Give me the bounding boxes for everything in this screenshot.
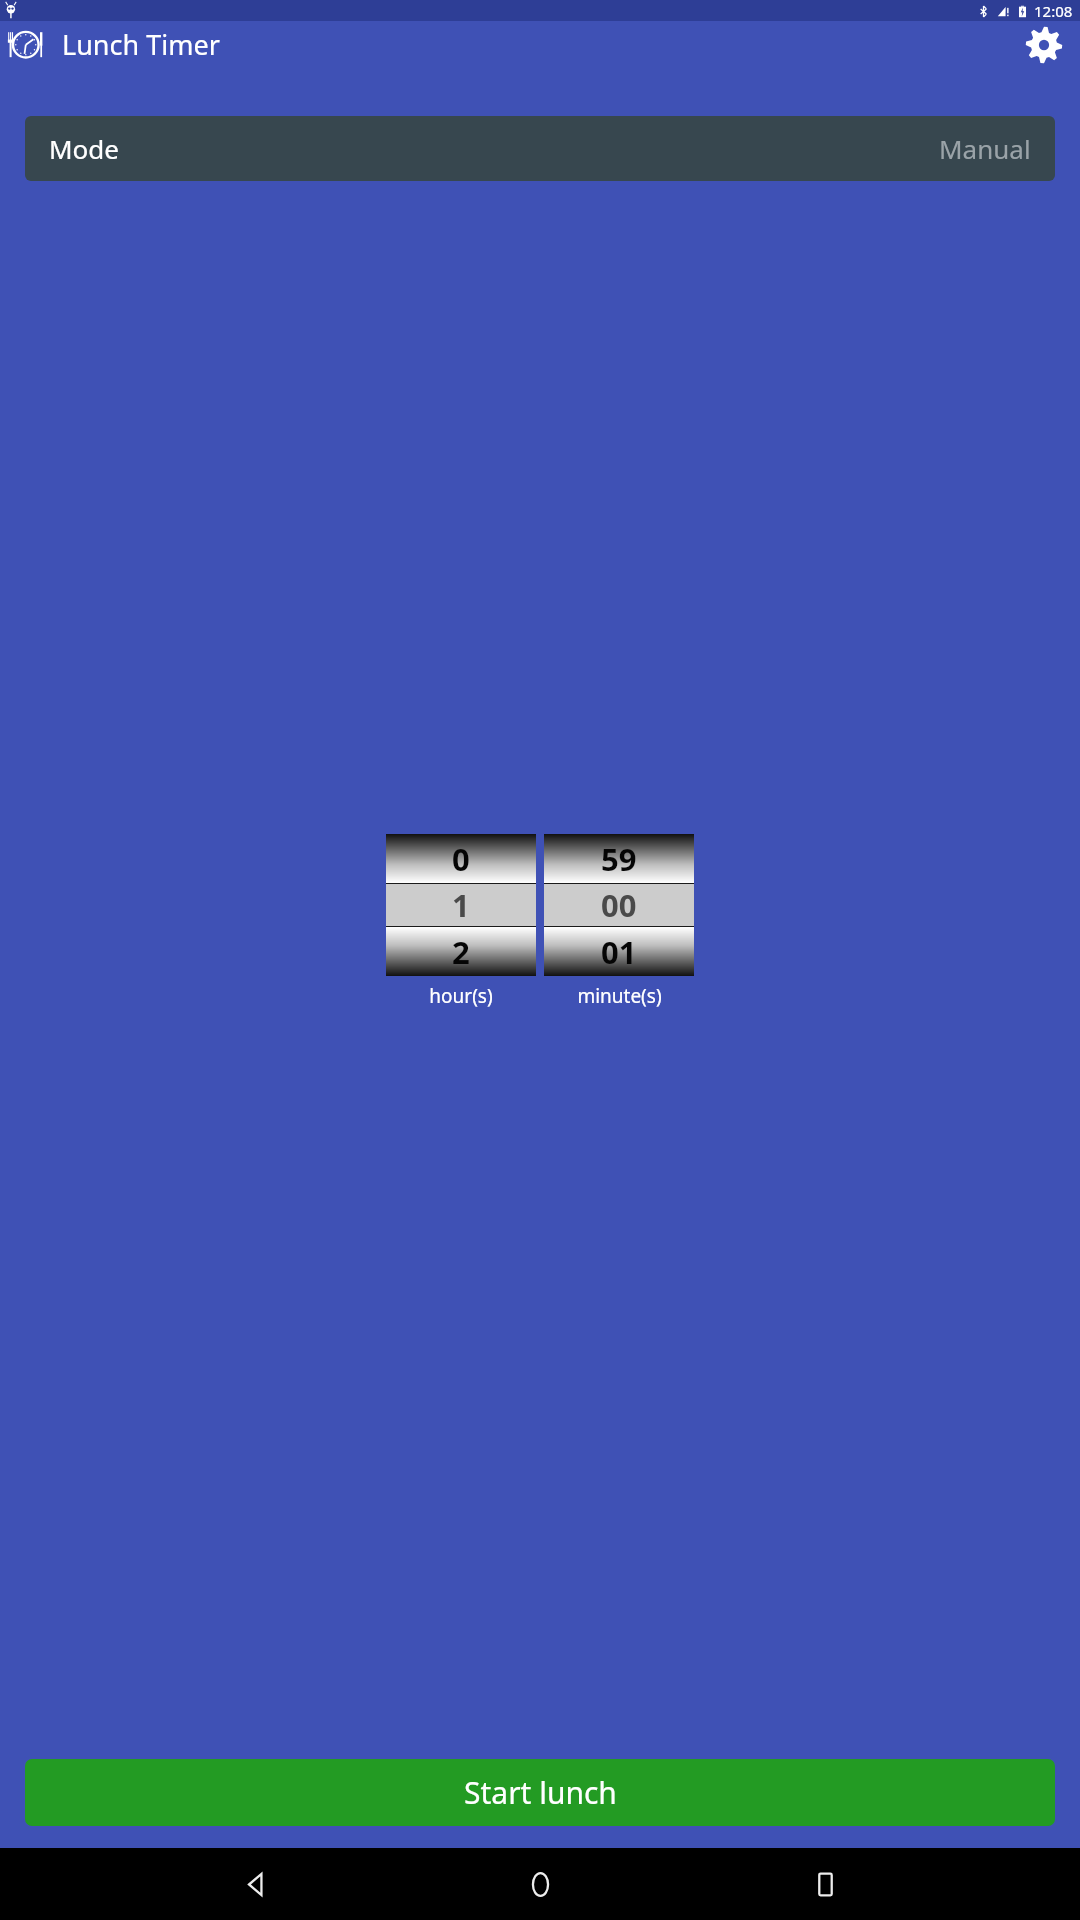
staticText: 2 (452, 931, 470, 973)
staticText: 12:08 (1034, 1, 1073, 21)
staticText: minute(s) (577, 983, 662, 1009)
staticText: 01 (601, 931, 637, 973)
button[interactable]: Back (225, 1854, 285, 1914)
staticText: 59 (601, 838, 637, 880)
button[interactable]: Settings (1022, 23, 1066, 67)
staticText: Manual (939, 131, 1031, 166)
button[interactable]: Mode (25, 116, 1055, 181)
staticText: Lunch Timer (62, 26, 220, 63)
button[interactable]: 0 (386, 834, 536, 976)
staticText: Start lunch (464, 1772, 617, 1813)
button[interactable]: Home (510, 1854, 570, 1914)
button[interactable]: 59 (544, 834, 694, 976)
button[interactable]: Start lunch (25, 1759, 1055, 1826)
staticText: Mode (49, 131, 119, 166)
staticText: 1 (452, 884, 470, 926)
staticText: 0 (452, 838, 470, 880)
staticText: hour(s) (429, 983, 493, 1009)
button[interactable]: Recent apps (795, 1854, 855, 1914)
staticText: 00 (601, 884, 637, 926)
